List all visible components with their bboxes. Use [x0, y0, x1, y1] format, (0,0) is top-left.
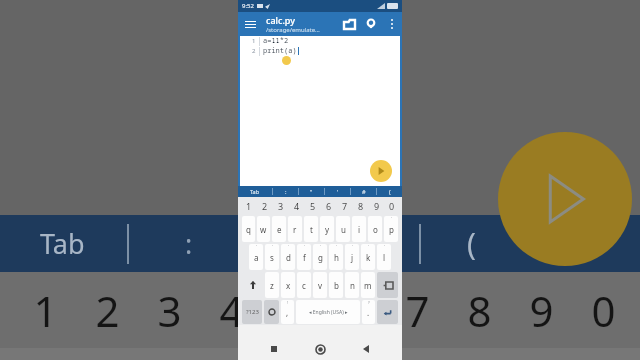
staticText: s	[270, 252, 274, 263]
button[interactable]: Shift	[242, 272, 263, 298]
staticText: 9:52	[242, 2, 254, 10]
staticText: (	[467, 223, 476, 264]
button[interactable]: q	[242, 216, 255, 242]
button[interactable]: o	[368, 216, 382, 242]
staticText: Tab	[40, 225, 85, 262]
staticText: e	[277, 224, 282, 235]
button[interactable]: '	[249, 244, 263, 270]
button[interactable]: (	[377, 186, 402, 197]
button[interactable]: ?123	[242, 300, 262, 324]
button[interactable]: '	[361, 244, 375, 270]
staticText: n	[350, 280, 355, 291]
button[interactable]: Run	[370, 160, 392, 182]
button[interactable]: More options	[382, 14, 402, 34]
button[interactable]: z	[265, 272, 279, 298]
button[interactable]: Recent apps	[264, 339, 284, 359]
staticText: a=11*2	[263, 36, 289, 46]
staticText: 9	[374, 200, 380, 212]
staticText: 6	[326, 200, 332, 212]
staticText: w	[260, 224, 267, 235]
button[interactable]: 9	[369, 197, 385, 215]
button[interactable]: 5	[305, 197, 321, 215]
button[interactable]: '	[313, 244, 327, 270]
staticText: 3	[278, 200, 284, 212]
button[interactable]: w	[257, 216, 270, 242]
button[interactable]: b	[329, 272, 343, 298]
button[interactable]: v	[313, 272, 327, 298]
button[interactable]: r	[288, 216, 302, 242]
staticText: u	[341, 224, 346, 235]
staticText: d	[286, 252, 291, 263]
button[interactable]: Open navigation drawer	[238, 12, 262, 36]
button[interactable]: :	[273, 186, 298, 197]
staticText: :	[185, 225, 193, 262]
button[interactable]: '	[384, 216, 398, 242]
button[interactable]: 3	[273, 197, 289, 215]
button[interactable]: '	[265, 244, 279, 270]
staticText: ?123	[246, 308, 259, 316]
button[interactable]: 4	[289, 197, 305, 215]
staticText: 5	[281, 282, 306, 339]
button[interactable]: '	[377, 244, 391, 270]
button[interactable]: u	[336, 216, 350, 242]
button[interactable]: '	[345, 244, 359, 270]
staticText: 7	[405, 282, 430, 339]
button[interactable]: Hints	[360, 13, 382, 35]
staticText: 3	[157, 282, 182, 339]
staticText: '	[304, 244, 305, 249]
staticText: 7	[342, 200, 348, 212]
staticText: ?	[368, 300, 370, 305]
staticText: /storage/emulate…	[266, 26, 320, 34]
button[interactable]: Emoji	[264, 300, 279, 324]
button[interactable]: y	[320, 216, 334, 242]
button[interactable]: '	[329, 244, 343, 270]
button[interactable]: m	[361, 272, 375, 298]
button[interactable]: Backspace	[377, 272, 398, 298]
button[interactable]: #	[351, 186, 376, 197]
staticText: .	[367, 307, 370, 318]
button[interactable]: 8	[353, 197, 369, 215]
staticText: 2	[95, 282, 120, 339]
staticText: x	[286, 280, 291, 291]
button[interactable]: Open file	[338, 13, 360, 35]
staticText: 4	[219, 282, 244, 339]
button[interactable]: e	[272, 216, 286, 242]
staticText: 1	[246, 200, 252, 212]
button[interactable]: !	[281, 300, 294, 324]
button[interactable]: ◂ English (USA) ▸	[296, 300, 360, 324]
staticText: t	[310, 224, 313, 235]
button[interactable]: n	[345, 272, 359, 298]
staticText: 4	[294, 200, 300, 212]
staticText: b	[334, 280, 339, 291]
staticText: l	[383, 252, 386, 263]
staticText: 6	[343, 282, 368, 339]
button[interactable]: x	[281, 272, 295, 298]
staticText: ,	[286, 307, 289, 318]
staticText: h	[334, 252, 339, 263]
staticText: '	[391, 216, 392, 221]
button[interactable]: i	[352, 216, 366, 242]
button[interactable]: c	[297, 272, 311, 298]
staticText: o	[373, 224, 378, 235]
button[interactable]: 6	[321, 197, 337, 215]
button[interactable]: Enter	[377, 300, 398, 324]
button[interactable]: "	[299, 186, 324, 197]
button[interactable]: '	[281, 244, 295, 270]
button[interactable]: 7	[337, 197, 353, 215]
button[interactable]: t	[304, 216, 318, 242]
staticText: m	[364, 280, 372, 291]
button[interactable]: Back	[356, 339, 376, 359]
button[interactable]: Tab	[238, 186, 272, 197]
button[interactable]: 1	[241, 197, 257, 215]
button[interactable]: '	[325, 186, 350, 197]
staticText: (	[389, 188, 391, 195]
staticText: c	[302, 280, 306, 291]
button[interactable]: 2	[257, 197, 273, 215]
button[interactable]: 0	[385, 197, 399, 215]
button[interactable]: ?	[362, 300, 375, 324]
staticText: 2	[262, 200, 268, 212]
button[interactable]: '	[297, 244, 311, 270]
button[interactable]: Home	[310, 339, 330, 359]
staticText: '	[336, 244, 337, 249]
staticText: "	[310, 188, 313, 195]
